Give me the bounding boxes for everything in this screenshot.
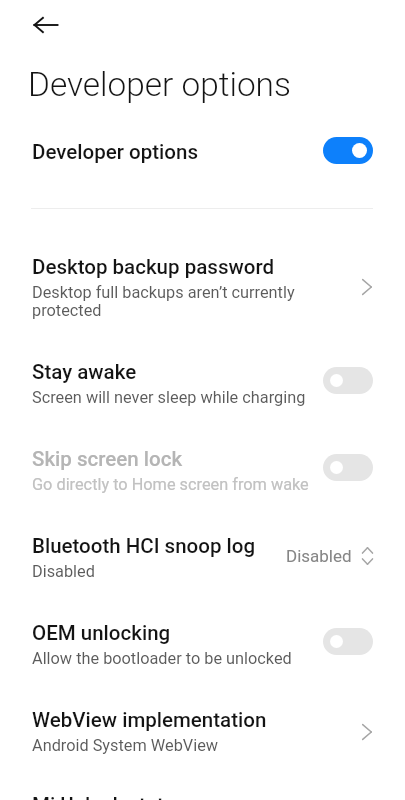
staticText: Desktop full backups aren’t currently pr… <box>32 283 298 320</box>
staticText: Desktop backup password <box>32 255 274 279</box>
other: Open <box>361 722 373 742</box>
staticText: Go directly to Home screen from wake <box>32 475 309 494</box>
button[interactable]: Desktop backup password <box>0 234 405 340</box>
staticText: Screen will never sleep while charging <box>32 388 306 407</box>
button[interactable]: Stay awake <box>0 340 405 427</box>
button[interactable]: Back <box>29 15 63 35</box>
staticText: OEM unlocking <box>32 621 171 645</box>
button[interactable]: OEM unlocking <box>0 601 405 688</box>
button[interactable]: Switch off <box>323 367 373 394</box>
button[interactable]: Bluetooth HCI snoop log <box>0 514 405 601</box>
button[interactable]: Switch off <box>323 628 373 655</box>
staticText: Allow the bootloader to be unlocked <box>32 649 292 668</box>
button[interactable]: WebView implementation <box>0 688 405 775</box>
staticText: Disabled <box>32 562 95 581</box>
staticText: Developer options <box>32 140 199 164</box>
staticText: Skip screen lock <box>32 447 183 471</box>
button[interactable]: Switch on <box>323 137 373 164</box>
other: Open <box>361 277 373 297</box>
button[interactable]: Skip screen lock <box>0 427 405 514</box>
button[interactable]: Switch off <box>323 454 373 481</box>
staticText: Disabled <box>286 546 352 566</box>
staticText: Bluetooth HCI snoop log <box>32 534 256 558</box>
button[interactable]: Mi Unlock status <box>0 774 405 800</box>
staticText: Android System WebView <box>32 736 219 755</box>
staticText: Developer options <box>28 65 291 104</box>
staticText: Stay awake <box>32 360 137 384</box>
button[interactable]: Disabled <box>286 547 373 569</box>
staticText: Mi Unlock status <box>32 793 186 800</box>
staticText: WebView implementation <box>32 708 267 732</box>
button[interactable]: Developer options <box>0 129 405 174</box>
